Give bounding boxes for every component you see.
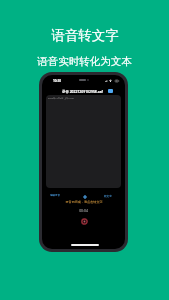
staticText: 00:04 [79, 208, 88, 213]
staticText: 转文字 [104, 194, 112, 197]
button[interactable]: 添加 [82, 194, 88, 200]
button[interactable]: 转文字 [104, 194, 112, 197]
staticText: 录音 20221209102958.caf [62, 89, 103, 94]
staticText: 2022年12月9日 上午10:30 [48, 97, 74, 100]
staticText: 语音实时转化为文本 [37, 55, 132, 68]
button[interactable]: 录音 [80, 217, 88, 225]
button[interactable]: 编辑录音 [50, 194, 60, 197]
staticText: 10:30 [53, 79, 61, 83]
staticText: 语音转文字 [51, 27, 119, 44]
button[interactable]: 完成 [108, 89, 113, 93]
staticText: 编辑录音 [50, 194, 60, 197]
staticText: 录音已完成，请点击转文字 [65, 200, 103, 204]
